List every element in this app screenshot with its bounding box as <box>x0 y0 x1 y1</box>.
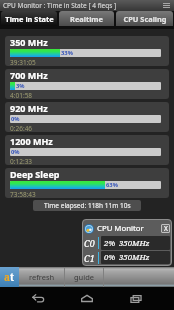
staticText: 3% <box>16 82 25 90</box>
staticText: 33% <box>61 49 73 57</box>
staticText: guide <box>74 272 95 282</box>
staticText: t <box>10 270 15 284</box>
staticText: 350MHz <box>119 252 150 263</box>
staticText: 0% <box>11 148 20 156</box>
staticText: C1 <box>84 252 97 264</box>
button[interactable]: guide <box>65 267 103 287</box>
staticText: CPU Monitor : Time in State [ 4 fieqs ] <box>3 1 117 10</box>
button[interactable]: 350 MHz <box>5 36 169 66</box>
button[interactable]: refresh <box>19 267 64 287</box>
staticText: X <box>164 224 168 233</box>
button[interactable]: Time elapsed: 118h 11m 10s <box>33 200 141 211</box>
button[interactable]: Realtime <box>59 11 114 26</box>
button[interactable]: Time in State <box>1 11 57 26</box>
staticText: CPU Scaling <box>123 14 167 24</box>
staticText: 700 MHz <box>10 69 48 81</box>
button[interactable]: Menu <box>162 1 171 10</box>
staticText: 73:58:43 <box>10 190 36 198</box>
button[interactable]: Deep Sleep <box>5 168 169 198</box>
button[interactable]: Recent apps <box>123 287 149 310</box>
staticText: Deep Sleep <box>10 168 60 180</box>
staticText: C0 <box>84 237 97 249</box>
staticText: 350MHz <box>119 238 150 249</box>
staticText: 350 MHz <box>10 36 48 48</box>
staticText: CPU Monitor <box>97 223 144 234</box>
button[interactable]: App icon <box>0 267 19 287</box>
staticText: 63% <box>106 181 118 189</box>
staticText: Realtime <box>70 14 103 24</box>
button[interactable]: 700 MHz <box>5 69 169 99</box>
staticText: refresh <box>29 272 55 282</box>
button[interactable]: Home <box>74 287 100 310</box>
staticText: 0:26:46 <box>10 124 33 132</box>
button[interactable]: Close <box>161 224 170 233</box>
staticText: 4:01:58 <box>10 91 33 99</box>
button[interactable]: CPU Scaling <box>116 11 173 26</box>
button[interactable]: 1200 MHz <box>5 135 169 165</box>
staticText: 2% <box>104 238 116 249</box>
button[interactable]: Back <box>25 287 51 310</box>
staticText: 0% <box>11 115 20 123</box>
staticText: 920 MHz <box>10 102 48 114</box>
staticText: Time elapsed: 118h 11m 10s <box>44 201 131 210</box>
staticText: a <box>4 270 10 284</box>
staticText: Time in State <box>5 14 54 24</box>
button[interactable]: 920 MHz <box>5 102 169 132</box>
staticText: 0:12:33 <box>10 157 33 165</box>
staticText: 1200 MHz <box>10 135 53 147</box>
staticText: 39:31:05 <box>10 58 36 66</box>
staticText: 0% <box>104 252 116 263</box>
